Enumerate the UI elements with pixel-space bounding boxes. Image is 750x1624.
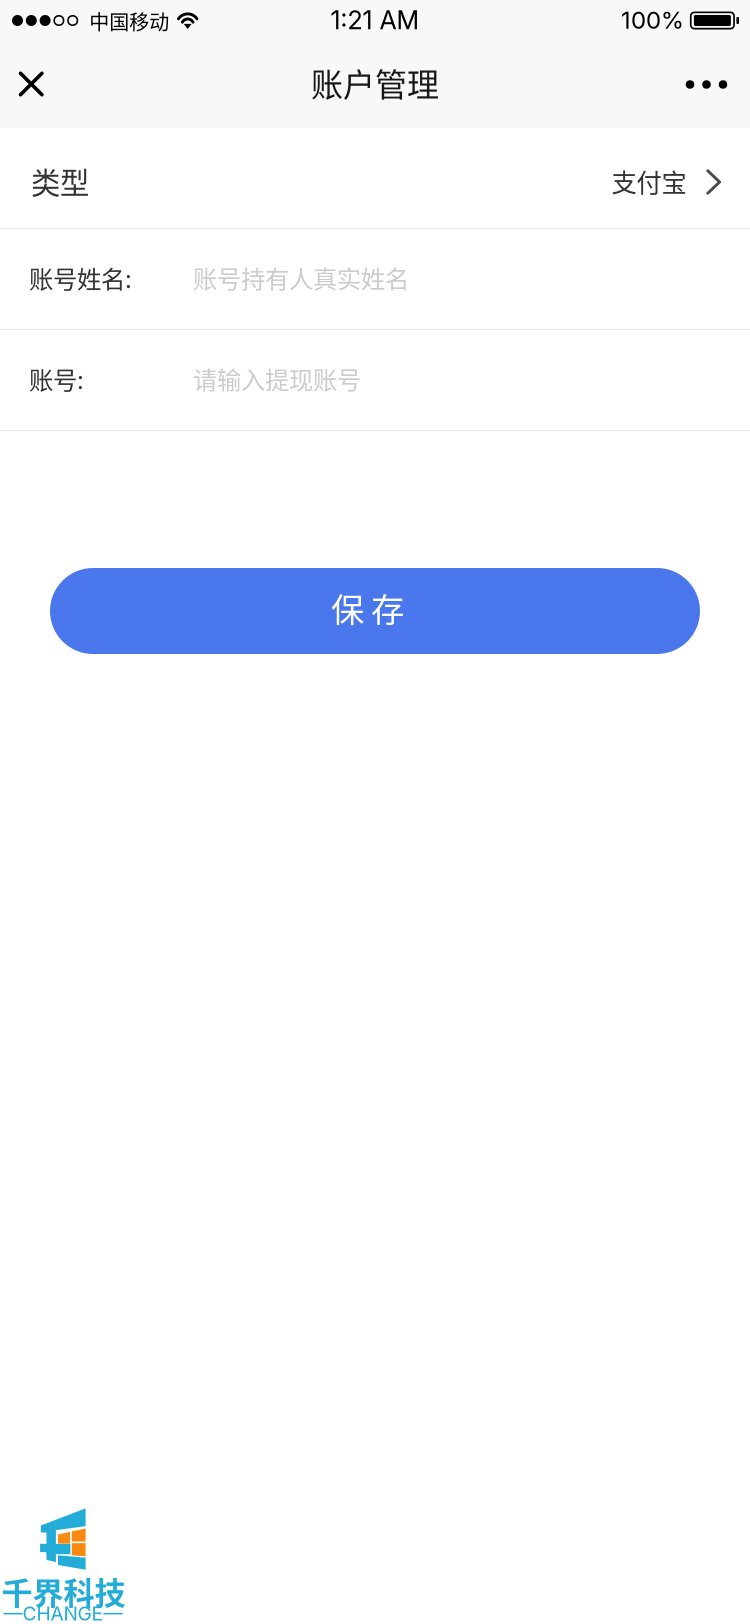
staticText: 账户管理 [311, 59, 439, 106]
button[interactable]: More [663, 45, 750, 128]
staticText: 100% [621, 5, 684, 34]
button[interactable]: Close [0, 45, 62, 128]
staticText: —CHANGE— [3, 1602, 122, 1624]
staticText: 账号姓名: [29, 260, 132, 295]
button[interactable]: 保 存 [50, 568, 700, 654]
staticText: 类型 [31, 160, 89, 202]
staticText: 保 存 [331, 583, 404, 632]
button[interactable]: 类型 [0, 128, 750, 228]
staticText: 请输入提现账号 [193, 361, 361, 396]
staticText: 1:21 AM [330, 5, 419, 35]
button[interactable]: 账号姓名: [0, 229, 750, 329]
staticText: 支付宝 [611, 163, 686, 199]
staticText: 中国移动 [89, 6, 169, 35]
staticText: 账号持有人真实姓名 [193, 260, 409, 295]
staticText: 千界科技 [1, 1568, 125, 1613]
button[interactable]: 账号: [0, 330, 750, 430]
staticText: 账号: [29, 361, 84, 396]
